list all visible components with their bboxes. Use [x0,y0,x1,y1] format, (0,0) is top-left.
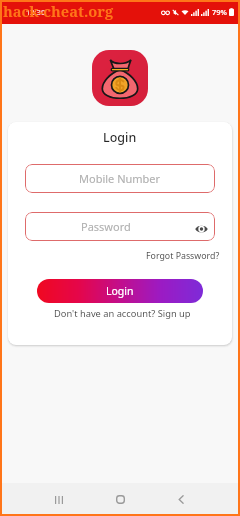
button[interactable]: Login [37,279,203,303]
staticText: Mobile Number [79,171,161,186]
button[interactable]: Mobile Number [25,164,215,193]
button[interactable]: Don't have an account? Sign up [54,307,191,320]
staticText: Password [81,219,131,234]
button[interactable]: Forgot Password? [146,250,220,262]
button[interactable]: Home [103,483,137,516]
button[interactable]: Show password [187,213,215,240]
staticText: hack-cheat.org [3,1,114,21]
button[interactable]: Recent apps [42,483,76,516]
staticText: 79% [212,7,227,17]
button[interactable]: Back [164,483,198,516]
staticText: Login [106,284,134,298]
staticText: Login [103,129,137,146]
button[interactable]: Password [25,212,215,241]
staticText: 12:30 [26,7,46,17]
